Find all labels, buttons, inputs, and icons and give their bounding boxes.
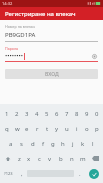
staticText: 2: [15, 110, 19, 118]
button[interactable]: h: [58, 136, 68, 151]
staticText: l: [92, 140, 94, 148]
staticText: 1: [5, 110, 9, 118]
button[interactable]: 6: [52, 107, 62, 121]
staticText: p: [95, 125, 99, 133]
button[interactable]: PB9GD1PA: [5, 31, 98, 39]
staticText: v: [48, 155, 52, 163]
button[interactable]: s: [16, 136, 27, 151]
button[interactable]: 2: [12, 107, 22, 121]
button[interactable]: 7: [62, 107, 72, 121]
button[interactable]: x: [24, 151, 34, 166]
staticText: Парола: [5, 46, 19, 51]
button[interactable]: 9: [82, 107, 92, 121]
button[interactable]: c: [34, 151, 44, 166]
button[interactable]: i: [72, 121, 82, 136]
staticText: .: [79, 170, 81, 178]
button[interactable]: ?123: [1, 166, 16, 181]
button[interactable]: w: [12, 121, 22, 136]
button[interactable]: r: [32, 121, 42, 136]
button[interactable]: y: [52, 121, 62, 136]
staticText: w: [15, 125, 20, 133]
button[interactable]: f: [38, 136, 48, 151]
staticText: 6: [55, 110, 59, 118]
staticText: t: [46, 125, 49, 133]
staticText: g: [51, 140, 55, 148]
staticText: ••••••••: [5, 52, 24, 60]
button[interactable]: v: [44, 151, 55, 166]
staticText: 9: [85, 110, 89, 118]
staticText: 14:32: [2, 1, 13, 6]
staticText: f: [42, 140, 45, 148]
button[interactable]: 8: [72, 107, 82, 121]
button[interactable]: d: [27, 136, 38, 151]
staticText: x: [27, 155, 31, 163]
button[interactable]: k: [78, 136, 88, 151]
staticText: y: [55, 125, 59, 133]
staticText: j: [72, 140, 74, 148]
button[interactable]: z: [14, 151, 24, 166]
staticText: a: [9, 140, 13, 148]
button[interactable]: Shift: [1, 151, 14, 166]
staticText: 0: [95, 110, 99, 118]
button[interactable]: p: [92, 121, 102, 136]
staticText: c: [38, 155, 41, 163]
button[interactable]: t: [42, 121, 52, 136]
staticText: q: [5, 125, 9, 133]
button[interactable]: .: [74, 166, 85, 181]
staticText: k: [81, 140, 85, 148]
staticText: 8: [75, 110, 79, 118]
button[interactable]: 5: [42, 107, 52, 121]
button[interactable]: m: [77, 151, 88, 166]
staticText: m: [80, 155, 86, 163]
button[interactable]: n: [66, 151, 77, 166]
button[interactable]: b: [55, 151, 66, 166]
staticText: ?123: [4, 171, 13, 176]
staticText: e: [25, 125, 29, 133]
button[interactable]: Enter: [85, 166, 102, 181]
button[interactable]: a: [5, 136, 16, 151]
staticText: 3: [25, 110, 29, 118]
staticText: PB9GD1PA: [5, 31, 36, 39]
button[interactable]: o: [82, 121, 92, 136]
staticText: ,: [21, 170, 23, 178]
staticText: h: [61, 140, 65, 148]
staticText: i: [76, 125, 78, 133]
button[interactable]: 0: [92, 107, 102, 121]
staticText: s: [20, 140, 23, 148]
staticText: Регистриране на влекач: [5, 10, 76, 18]
staticText: b: [59, 155, 63, 163]
staticText: o: [85, 125, 89, 133]
button[interactable]: q: [1, 121, 12, 136]
button[interactable]: g: [48, 136, 58, 151]
staticText: n: [70, 155, 74, 163]
staticText: z: [18, 155, 21, 163]
button[interactable]: 4: [32, 107, 42, 121]
staticText: u: [65, 125, 69, 133]
staticText: 4: [35, 110, 39, 118]
staticText: ВХОД: [45, 71, 59, 78]
staticText: 7: [65, 110, 69, 118]
button[interactable]: l: [88, 136, 98, 151]
button[interactable]: ВХОД: [5, 69, 98, 79]
button[interactable]: e: [22, 121, 32, 136]
button[interactable]: 1: [1, 107, 12, 121]
staticText: 5: [45, 110, 49, 118]
button[interactable]: Show password: [91, 53, 98, 60]
button[interactable]: 3: [22, 107, 32, 121]
button[interactable]: Backspace: [88, 151, 102, 166]
button[interactable]: u: [62, 121, 72, 136]
button[interactable]: j: [68, 136, 78, 151]
button[interactable]: ••••••••: [5, 52, 98, 60]
staticText: d: [31, 140, 35, 148]
staticText: r: [36, 125, 39, 133]
button[interactable]: ,: [16, 166, 27, 181]
staticText: Номер на влекач: [5, 24, 35, 29]
